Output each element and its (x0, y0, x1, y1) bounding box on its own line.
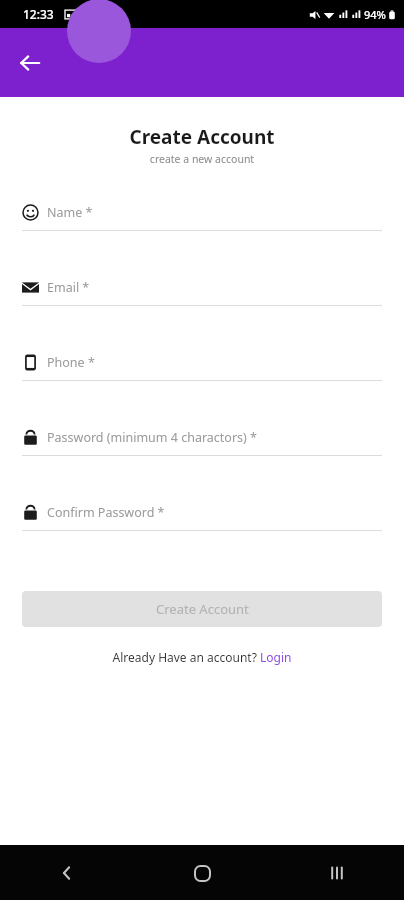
button[interactable]: Email * (0, 269, 404, 344)
staticText: 12:33 (23, 6, 54, 22)
button[interactable]: Phone * (0, 344, 404, 419)
staticText: create a new account (0, 152, 404, 166)
button[interactable]: Password (minimum 4 charactors) * (0, 419, 404, 494)
staticText: Password (minimum 4 charactors) * (47, 429, 257, 446)
button[interactable]: Create Account (22, 591, 382, 627)
button[interactable]: Confirm Password * (0, 494, 404, 569)
button[interactable]: Back (10, 43, 50, 83)
staticText: Create Account (0, 124, 404, 150)
button[interactable]: Recents (313, 849, 361, 897)
staticText: Name * (47, 204, 93, 221)
button[interactable]: Name * (0, 194, 404, 269)
button[interactable]: Back (43, 849, 91, 897)
button[interactable]: Home (178, 849, 226, 897)
button[interactable]: Already Have an account? Login (0, 649, 404, 665)
staticText: Confirm Password * (47, 504, 165, 521)
staticText: Email * (47, 279, 90, 296)
staticText: Phone * (47, 354, 95, 371)
staticText: 94% (364, 7, 386, 22)
staticText: Create Account (156, 600, 249, 618)
